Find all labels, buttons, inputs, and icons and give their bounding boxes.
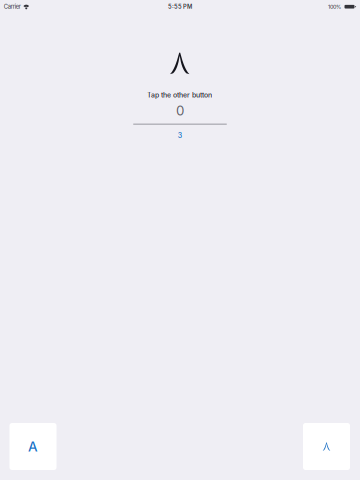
staticText: Carrier [4,3,21,10]
staticText: A [28,438,38,455]
staticText: 3 [178,131,182,140]
staticText: 5:55 PM [168,3,192,10]
button[interactable]: A [9,423,56,470]
staticText: 0 [176,102,184,119]
staticText: Tap the other button [147,91,212,99]
staticText: 100% [328,3,341,10]
button[interactable]: Caret [303,423,350,470]
